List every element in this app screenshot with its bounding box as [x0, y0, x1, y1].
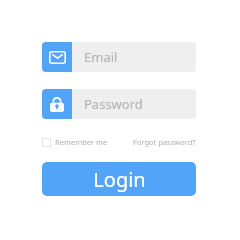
- button[interactable]: Password: [42, 89, 196, 119]
- button[interactable]: Remember me: [42, 136, 108, 148]
- other: Password: [42, 89, 72, 119]
- staticText: Password: [84, 95, 143, 113]
- button[interactable]: Login: [42, 162, 196, 196]
- staticText: Forgot password?: [133, 137, 196, 147]
- staticText: Login: [93, 166, 146, 193]
- staticText: Remember me: [55, 137, 108, 147]
- button[interactable]: Email: [42, 42, 196, 72]
- staticText: Email: [84, 48, 118, 66]
- other: Email: [42, 42, 72, 72]
- button[interactable]: Forgot password?: [133, 137, 196, 147]
